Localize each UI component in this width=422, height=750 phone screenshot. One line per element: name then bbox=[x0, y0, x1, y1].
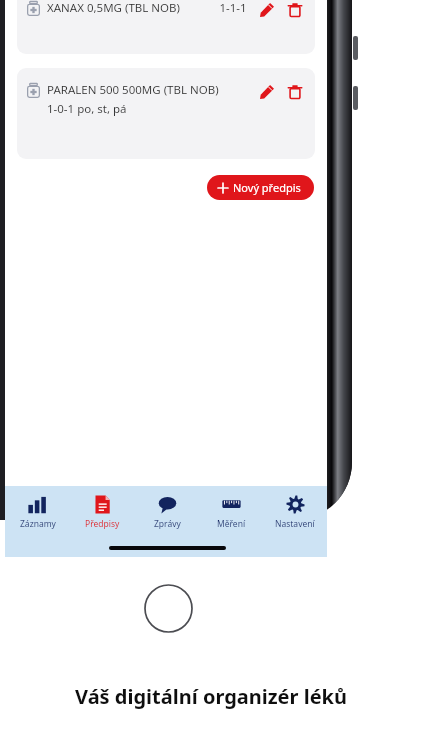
button[interactable]: Smazat bbox=[285, 82, 305, 102]
button[interactable]: Smazat bbox=[285, 0, 305, 20]
button[interactable]: Zprávy bbox=[135, 486, 199, 538]
button[interactable]: Záznamy bbox=[5, 486, 70, 538]
button[interactable]: XANAX 0,5MG (TBL NOB) bbox=[17, 0, 315, 54]
staticText: Nový předpis bbox=[233, 180, 301, 195]
staticText: 1-0-1 po, st, pá bbox=[47, 101, 127, 117]
button[interactable]: Nastavení bbox=[263, 486, 327, 538]
staticText: Měření bbox=[217, 518, 246, 530]
button[interactable]: Upravit bbox=[257, 82, 277, 102]
button[interactable]: Nový předpis bbox=[207, 175, 314, 200]
staticText: Předpisy bbox=[85, 518, 120, 530]
button[interactable]: PARALEN 500 500MG (TBL NOB) bbox=[17, 68, 315, 159]
staticText: XANAX 0,5MG (TBL NOB) bbox=[47, 0, 180, 16]
button[interactable]: Měření bbox=[199, 486, 263, 538]
staticText: Váš digitální organizér léků bbox=[75, 683, 347, 710]
staticText: Zprávy bbox=[154, 518, 181, 530]
button[interactable]: Předpisy bbox=[70, 486, 135, 538]
button[interactable]: Upravit bbox=[257, 0, 277, 20]
staticText: PARALEN 500 500MG (TBL NOB) bbox=[47, 82, 219, 98]
staticText: Záznamy bbox=[20, 518, 56, 530]
staticText: Nastavení bbox=[275, 518, 315, 530]
staticText: 1-1-1 bbox=[218, 0, 248, 16]
